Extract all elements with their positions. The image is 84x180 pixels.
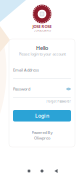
staticText: JOSE ROSE xyxy=(32,24,51,29)
staticText: Hello xyxy=(36,44,48,52)
staticText: I forgot Password? xyxy=(45,100,70,103)
staticText: Login xyxy=(35,112,49,119)
button[interactable]: Password xyxy=(13,86,71,98)
staticText: Please login to your account xyxy=(18,51,65,57)
staticText: Oliwpreo xyxy=(34,135,50,141)
staticText: Powered By xyxy=(31,130,52,135)
button[interactable]: I forgot Password? xyxy=(45,100,71,103)
button[interactable]: Login xyxy=(13,110,71,121)
button[interactable]: Home xyxy=(35,164,48,177)
staticText: CONSULTANTS xyxy=(33,29,50,32)
button[interactable]: Recent apps xyxy=(22,164,35,177)
staticText: Email Address xyxy=(13,67,39,73)
button[interactable]: Email Address xyxy=(13,67,71,79)
button[interactable]: Back xyxy=(49,164,62,177)
staticText: Password xyxy=(13,86,30,92)
